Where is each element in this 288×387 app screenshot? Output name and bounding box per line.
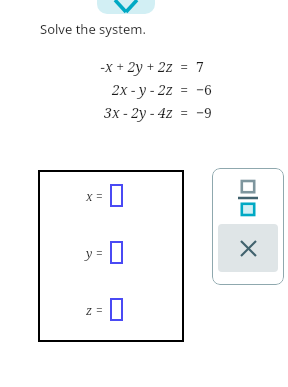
button[interactable]: Answer field z <box>110 298 123 321</box>
staticText: = <box>93 302 106 318</box>
staticText: = <box>173 103 196 122</box>
staticText: = <box>93 245 106 261</box>
staticText: 2x − y − 2z <box>111 80 173 99</box>
staticText: −x + 2y + 2z <box>100 57 173 76</box>
button[interactable]: Clear <box>218 224 278 272</box>
staticText: 7 <box>196 57 204 76</box>
staticText: = <box>173 57 196 76</box>
button[interactable]: Fraction <box>222 178 274 218</box>
staticText: = <box>173 80 196 99</box>
staticText: −9 <box>196 103 212 122</box>
staticText: Solve the system. <box>40 20 146 38</box>
staticText: z <box>86 302 93 318</box>
button[interactable]: Answer field y <box>110 241 123 264</box>
staticText: 3x − 2y − 4z <box>104 103 173 122</box>
button[interactable]: Answer field x <box>110 184 123 207</box>
button[interactable]: Collapse <box>97 0 155 14</box>
staticText: = <box>93 188 106 204</box>
staticText: −6 <box>196 80 212 99</box>
staticText: y <box>86 245 93 261</box>
staticText: x <box>86 188 93 204</box>
